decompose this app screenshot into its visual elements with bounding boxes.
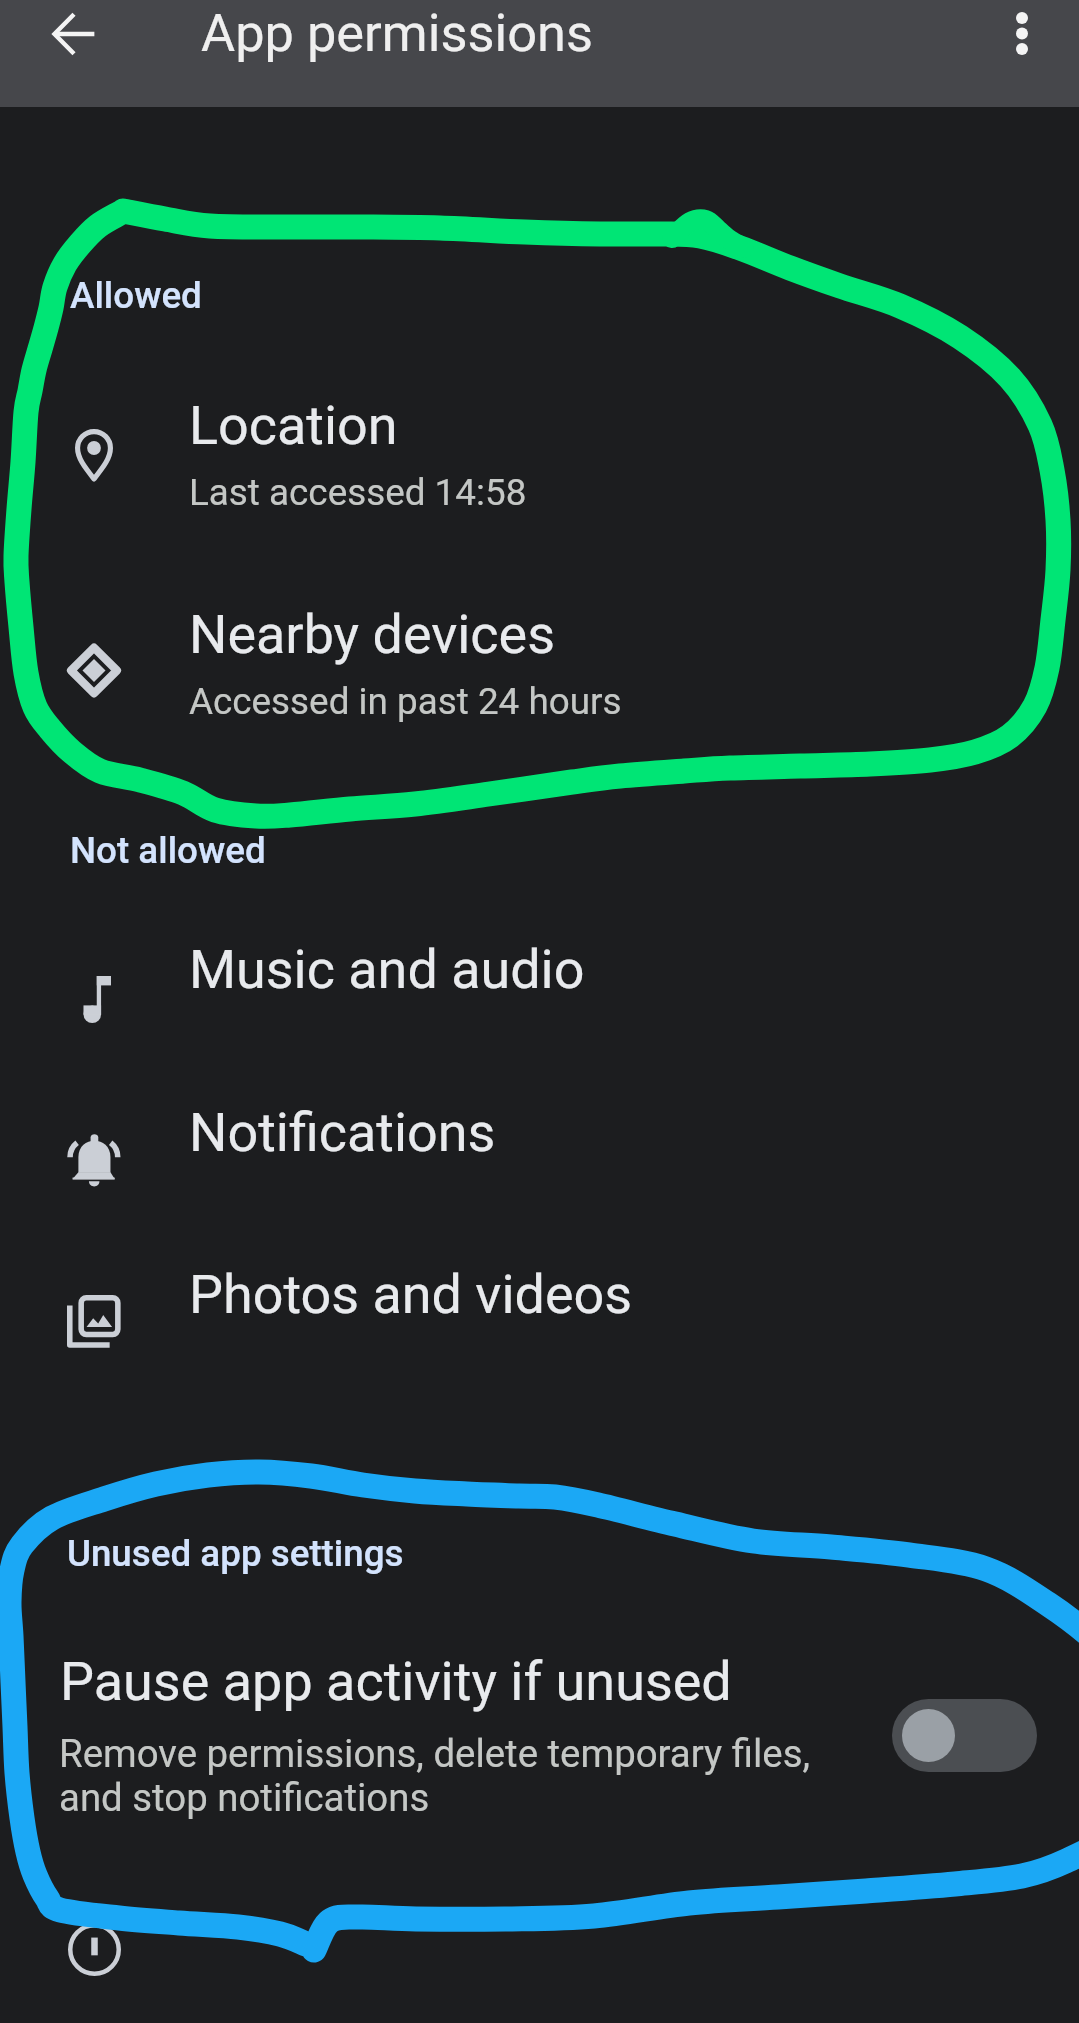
button[interactable]: Photos and videos <box>0 1241 1079 1319</box>
staticText: Nearby devices <box>189 603 555 666</box>
staticText: Pause app activity if unused <box>60 1650 732 1713</box>
button[interactable]: Navigate up <box>53 13 95 55</box>
button[interactable]: Location <box>0 375 1079 519</box>
staticText: Remove permissions, delete temporary fil… <box>59 1731 811 1820</box>
staticText: App permissions <box>201 2 593 63</box>
button[interactable]: Pause app activity if unused <box>0 1623 1079 1842</box>
staticText: Allowed <box>70 274 202 317</box>
button[interactable]: Pause app activity if unused <box>892 1699 1037 1772</box>
staticText: Last accessed 14:58 <box>189 471 527 514</box>
button[interactable]: More options <box>1016 12 1028 55</box>
button[interactable]: Notifications <box>0 1079 1079 1157</box>
staticText: Notifications <box>189 1101 496 1164</box>
button[interactable]: More information <box>68 1923 121 1976</box>
staticText: Location <box>189 394 398 457</box>
staticText: Photos and videos <box>189 1263 633 1326</box>
staticText: Music and audio <box>189 938 585 1001</box>
staticText: Unused app settings <box>67 1532 404 1575</box>
staticText: Not allowed <box>70 829 266 872</box>
staticText: Accessed in past 24 hours <box>189 680 622 723</box>
button[interactable]: Nearby devices <box>0 584 1079 728</box>
button[interactable]: Music and audio <box>0 915 1079 993</box>
